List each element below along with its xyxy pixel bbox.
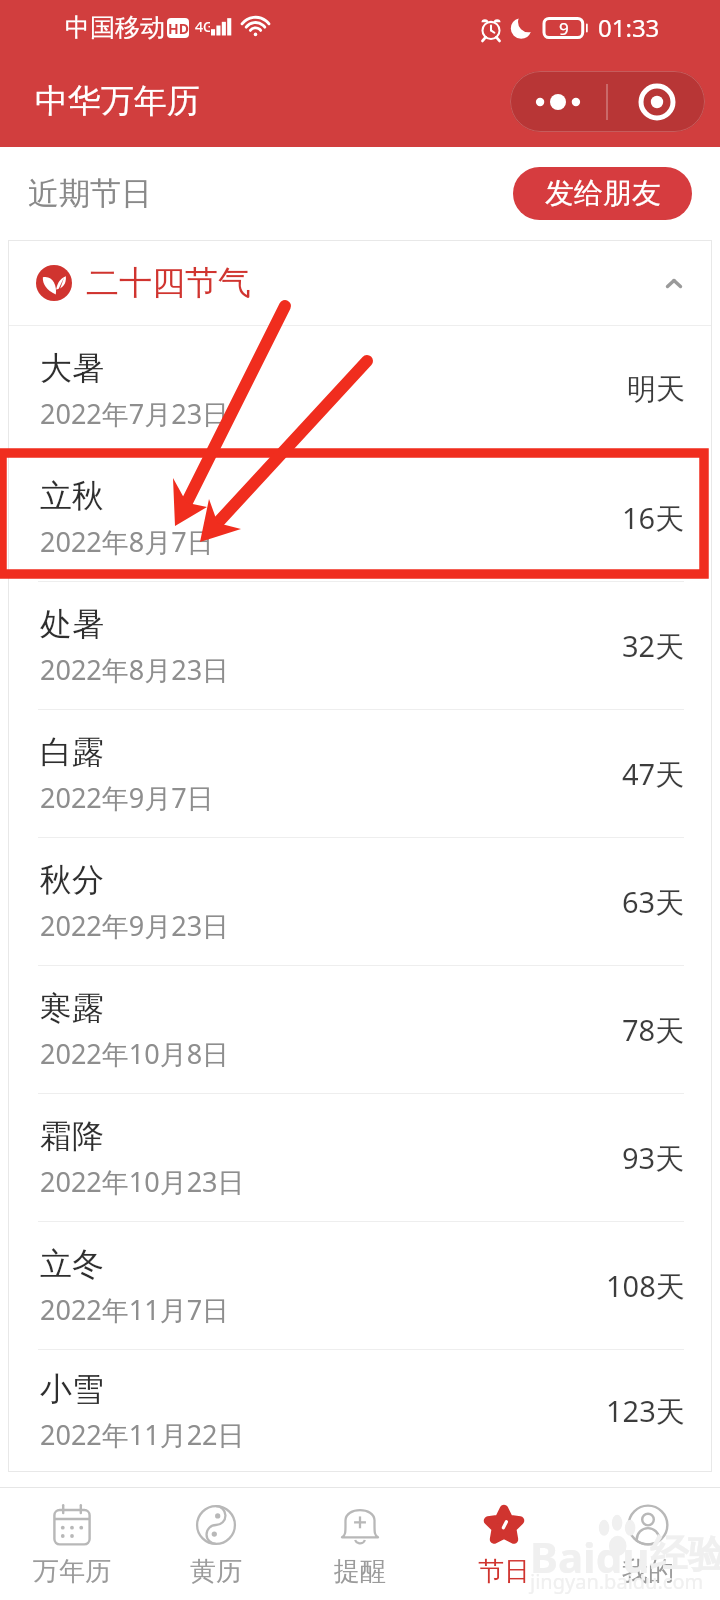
staticText: 32天 xyxy=(622,626,685,666)
staticText: jingyan.baidu.com xyxy=(530,1568,704,1595)
staticText: 2022年9月23日 xyxy=(40,907,230,944)
staticText: 处暑 xyxy=(40,604,104,644)
staticText: 78天 xyxy=(622,1010,685,1050)
staticText: 47天 xyxy=(622,754,685,794)
button[interactable]: 白露 xyxy=(8,710,712,837)
button[interactable]: 寒露 xyxy=(8,966,712,1093)
button[interactable]: More options xyxy=(510,71,705,132)
staticText: 4G xyxy=(195,17,210,36)
staticText: 16天 xyxy=(622,498,685,538)
staticText: 108天 xyxy=(606,1266,685,1306)
button[interactable]: 二十四节气 xyxy=(8,240,712,325)
staticText: 2022年7月23日 xyxy=(40,395,230,432)
staticText: 秋分 xyxy=(40,860,104,900)
button[interactable]: 提醒 xyxy=(288,1488,432,1600)
staticText: 2022年10月23日 xyxy=(40,1163,245,1200)
staticText: 2022年11月7日 xyxy=(40,1291,230,1328)
staticText: 2022年9月7日 xyxy=(40,779,214,816)
staticText: 万年历 xyxy=(33,1555,111,1588)
staticText: 白露 xyxy=(40,732,104,772)
staticText: 寒露 xyxy=(40,988,104,1028)
staticText: 2022年8月23日 xyxy=(40,651,230,688)
other: More options xyxy=(510,71,606,132)
staticText: 经验 xyxy=(650,1530,720,1578)
staticText: 节日 xyxy=(478,1555,530,1588)
other: Close mini program xyxy=(608,71,705,132)
button[interactable]: 黄历 xyxy=(144,1488,288,1600)
staticText: 霜降 xyxy=(40,1116,104,1156)
staticText: 2022年11月22日 xyxy=(40,1416,245,1453)
staticText: 近期节日 xyxy=(28,174,152,213)
staticText: HD xyxy=(168,19,189,38)
staticText: 123天 xyxy=(606,1391,685,1431)
button[interactable]: 小雪 xyxy=(8,1350,712,1472)
staticText: 提醒 xyxy=(334,1555,386,1588)
button[interactable]: 节日 xyxy=(432,1488,576,1600)
staticText: 9 xyxy=(559,17,569,40)
button[interactable]: 发给朋友 xyxy=(513,167,692,220)
staticText: 01:33 xyxy=(598,11,660,44)
button[interactable]: 秋分 xyxy=(8,838,712,965)
button[interactable]: 立秋 xyxy=(8,454,712,581)
staticText: 明天 xyxy=(627,371,685,408)
staticText: 大暑 xyxy=(40,348,104,388)
staticText: 63天 xyxy=(622,882,685,922)
button[interactable]: 万年历 xyxy=(0,1488,144,1600)
staticText: 立秋 xyxy=(40,476,104,516)
staticText: 小雪 xyxy=(40,1369,104,1409)
staticText: 立冬 xyxy=(40,1244,104,1284)
button[interactable]: 霜降 xyxy=(8,1094,712,1221)
staticText: 黄历 xyxy=(190,1555,242,1588)
button[interactable]: 立冬 xyxy=(8,1222,712,1349)
staticText: 我的 xyxy=(622,1555,674,1588)
staticText: 中华万年历 xyxy=(35,80,200,122)
staticText: Baidu xyxy=(530,1528,650,1585)
staticText: 发给朋友 xyxy=(545,175,661,212)
staticText: 2022年10月8日 xyxy=(40,1035,230,1072)
staticText: 二十四节气 xyxy=(86,262,251,304)
button[interactable]: 处暑 xyxy=(8,582,712,709)
button[interactable]: 大暑 xyxy=(8,326,712,453)
other: Collapse section xyxy=(651,260,697,306)
button[interactable]: 我的 xyxy=(576,1488,720,1600)
staticText: 93天 xyxy=(622,1138,685,1178)
staticText: 中国移动 xyxy=(65,12,165,43)
staticText: 2022年8月7日 xyxy=(40,523,214,560)
